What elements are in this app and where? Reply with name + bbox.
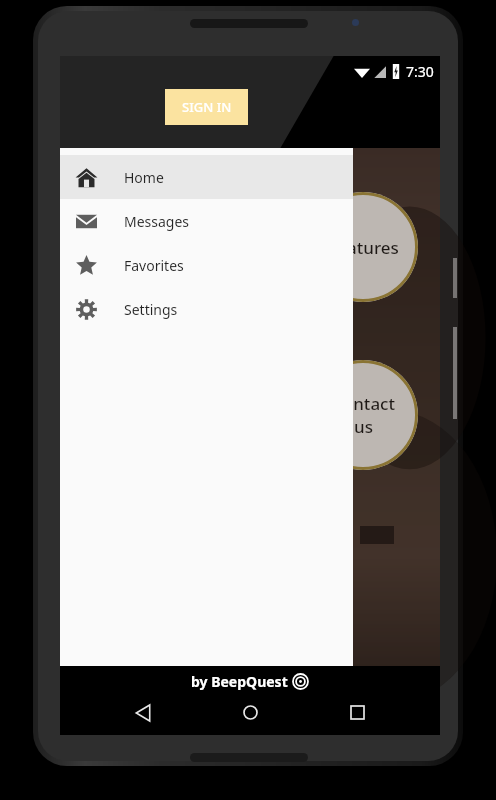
button[interactable]: Messages [60,199,353,243]
staticText: Messages [124,212,190,231]
staticText: Contact us [332,392,395,438]
button[interactable]: by BeepQuest [191,672,309,691]
button[interactable]: Features [308,192,418,302]
staticText: Favorites [124,256,184,275]
button[interactable]: Home [60,155,353,199]
staticText: Features [328,236,399,259]
button[interactable]: Favorites [60,243,353,287]
button[interactable]: Back [119,690,167,735]
staticText: Home [124,168,164,187]
staticText: SIGN IN [182,98,232,116]
button[interactable]: Recent apps [333,690,381,735]
button[interactable]: Contact us [308,360,418,470]
button[interactable]: Home [226,690,274,735]
staticText: by BeepQuest [191,672,288,691]
staticText: Statistics [310,191,364,209]
staticText: 7:30 [406,62,434,81]
button[interactable]: Settings [60,287,353,331]
staticText: Settings [124,300,178,319]
button[interactable]: SIGN IN [165,89,248,125]
